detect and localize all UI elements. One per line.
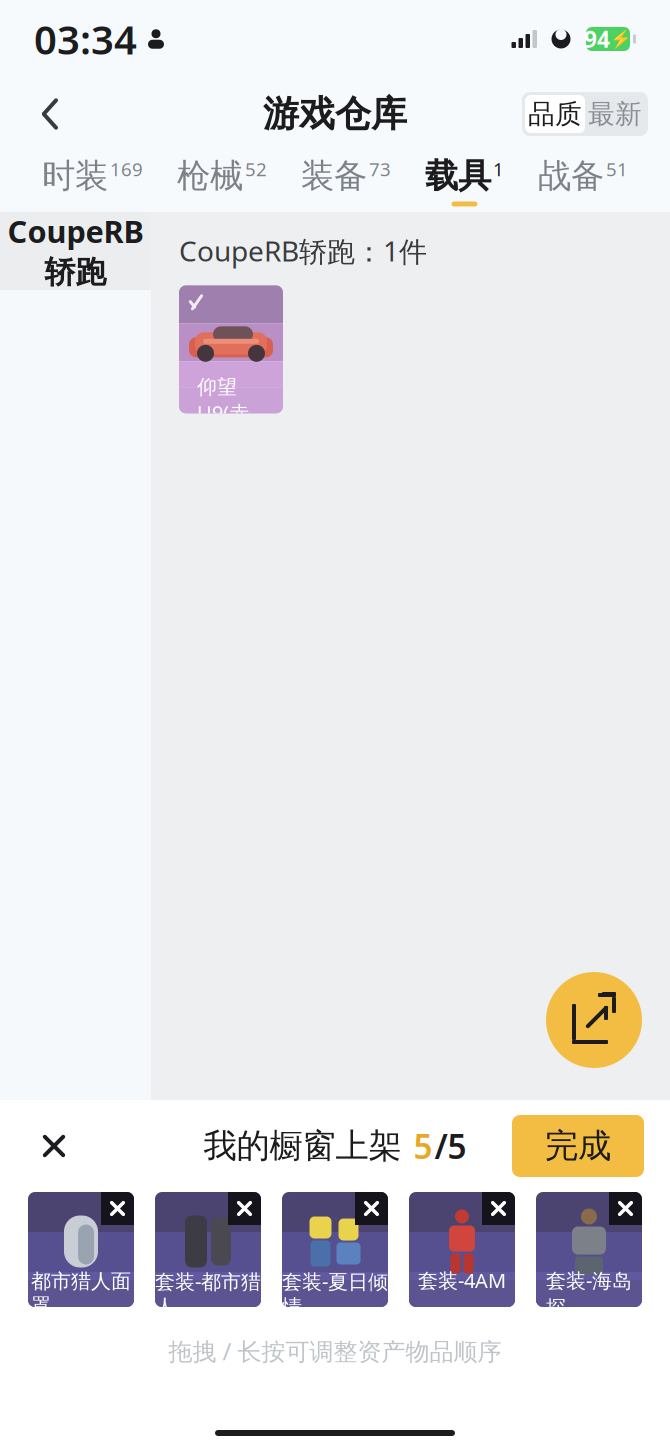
staticText: CoupeRB bbox=[7, 211, 143, 251]
staticText: 完成 bbox=[545, 1125, 611, 1166]
staticText: 品质 bbox=[528, 98, 582, 130]
staticText: 载具 bbox=[425, 155, 491, 196]
staticText: 73 bbox=[369, 156, 391, 181]
button[interactable]: 移除 套装-4AM … bbox=[482, 1192, 515, 1225]
staticText: 轿跑 bbox=[44, 253, 106, 291]
button[interactable]: 移除 套装-海岛探… bbox=[609, 1192, 642, 1225]
staticText: 装备 bbox=[301, 155, 367, 196]
staticText: CoupeRB轿跑：1件 bbox=[179, 232, 427, 269]
staticText: 03:34 bbox=[34, 12, 137, 65]
staticText: 仰望 U9(赤… bbox=[197, 375, 265, 426]
staticText: 169 bbox=[110, 156, 143, 181]
staticText: 套装-都市猎人 bbox=[155, 1268, 261, 1319]
button[interactable]: 移除 都市猎人面罩 bbox=[101, 1192, 134, 1225]
button[interactable]: 分享 bbox=[546, 972, 642, 1068]
staticText: 战备 bbox=[538, 155, 604, 196]
button[interactable]: 枪械 bbox=[177, 156, 267, 206]
button[interactable]: 返回 bbox=[22, 86, 78, 142]
staticText: 都市猎人面罩 bbox=[31, 1269, 131, 1318]
button[interactable]: CoupeRB bbox=[0, 212, 151, 290]
button[interactable]: 移除 套装-夏日倾情 bbox=[355, 1192, 388, 1225]
button[interactable]: 战备 bbox=[538, 156, 628, 206]
button[interactable]: 仰望 U9(赤… bbox=[179, 285, 283, 413]
button[interactable]: 时装 bbox=[42, 156, 143, 206]
staticText: 52 bbox=[245, 156, 267, 181]
staticText: 枪械 bbox=[177, 155, 243, 196]
staticText: 套装-4AM … bbox=[418, 1267, 506, 1320]
button[interactable]: 移除 套装-都市猎人 bbox=[228, 1192, 261, 1225]
staticText: 我的橱窗上架 bbox=[203, 1125, 411, 1166]
button[interactable]: 品质 bbox=[525, 95, 585, 133]
staticText: ⚡ bbox=[610, 29, 632, 49]
staticText: /5 bbox=[434, 1124, 466, 1168]
button[interactable]: 完成 bbox=[512, 1115, 644, 1177]
button[interactable]: 装备 bbox=[301, 156, 391, 206]
button[interactable]: 载具 bbox=[425, 156, 504, 206]
staticText: 最新 bbox=[588, 98, 642, 130]
staticText: 时装 bbox=[42, 155, 108, 196]
button[interactable]: 关闭 bbox=[26, 1118, 82, 1174]
staticText: 51 bbox=[606, 156, 628, 181]
staticText: 套装-海岛探… bbox=[546, 1267, 632, 1320]
staticText: 94 bbox=[584, 24, 610, 54]
button[interactable]: 最新 bbox=[585, 95, 645, 133]
staticText: 1 bbox=[493, 156, 504, 181]
staticText: 拖拽 / 长按可调整资产物品顺序 bbox=[168, 1335, 501, 1367]
staticText: 游戏仓库 bbox=[263, 92, 407, 136]
staticText: 套装-夏日倾情 bbox=[282, 1268, 388, 1319]
staticText: 5 bbox=[413, 1124, 432, 1168]
